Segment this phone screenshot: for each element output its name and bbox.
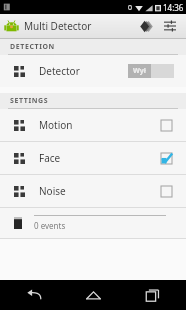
button[interactable]: Motion	[0, 109, 186, 141]
staticText: 14:36	[163, 2, 184, 13]
staticText: Detector	[39, 64, 80, 78]
button[interactable]: 0 events	[0, 208, 186, 238]
button[interactable]: Detector	[0, 55, 186, 87]
staticText: Face	[39, 151, 61, 165]
button[interactable]: Detector on off	[128, 64, 174, 78]
staticText: SETTINGS	[10, 96, 49, 106]
button[interactable]: Settings	[158, 14, 182, 38]
button[interactable]: Face	[0, 142, 186, 174]
button[interactable]: Recents	[127, 280, 177, 310]
staticText: 0 events	[34, 220, 66, 231]
button[interactable]: Layers	[134, 14, 158, 38]
button[interactable]: Checked	[158, 150, 174, 166]
button[interactable]: Back	[9, 280, 59, 310]
staticText: Motion	[39, 118, 73, 132]
button[interactable]: Unchecked	[158, 117, 174, 133]
staticText: Noise	[39, 184, 66, 198]
button[interactable]: Noise	[0, 175, 186, 207]
button[interactable]: Home	[68, 280, 118, 310]
button[interactable]: Unchecked	[158, 183, 174, 199]
staticText: Wył	[133, 66, 146, 76]
staticText: 0	[128, 3, 133, 13]
staticText: DETECTION	[10, 42, 55, 52]
staticText: Multi Detector	[24, 19, 92, 33]
